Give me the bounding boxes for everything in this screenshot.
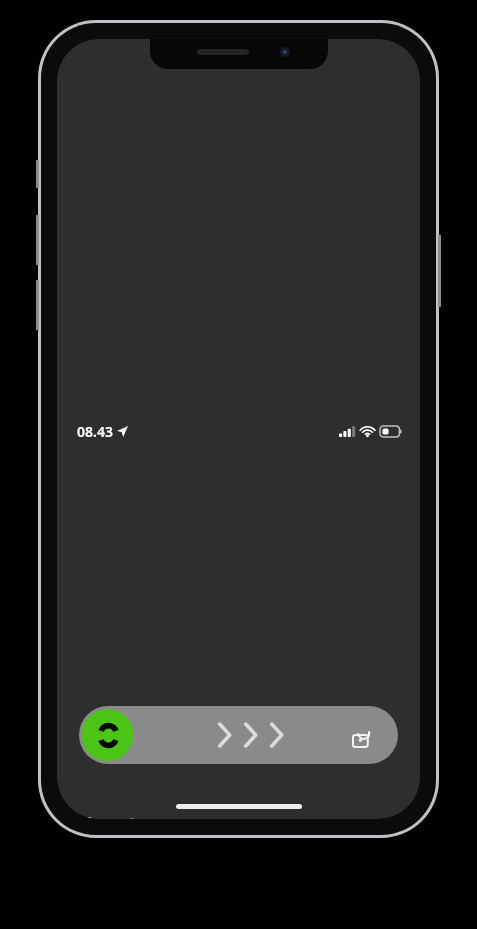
button[interactable]: Slide to unlock [79,706,398,764]
button[interactable]: Unlock [82,709,134,761]
staticText: 08.43 [77,422,113,441]
